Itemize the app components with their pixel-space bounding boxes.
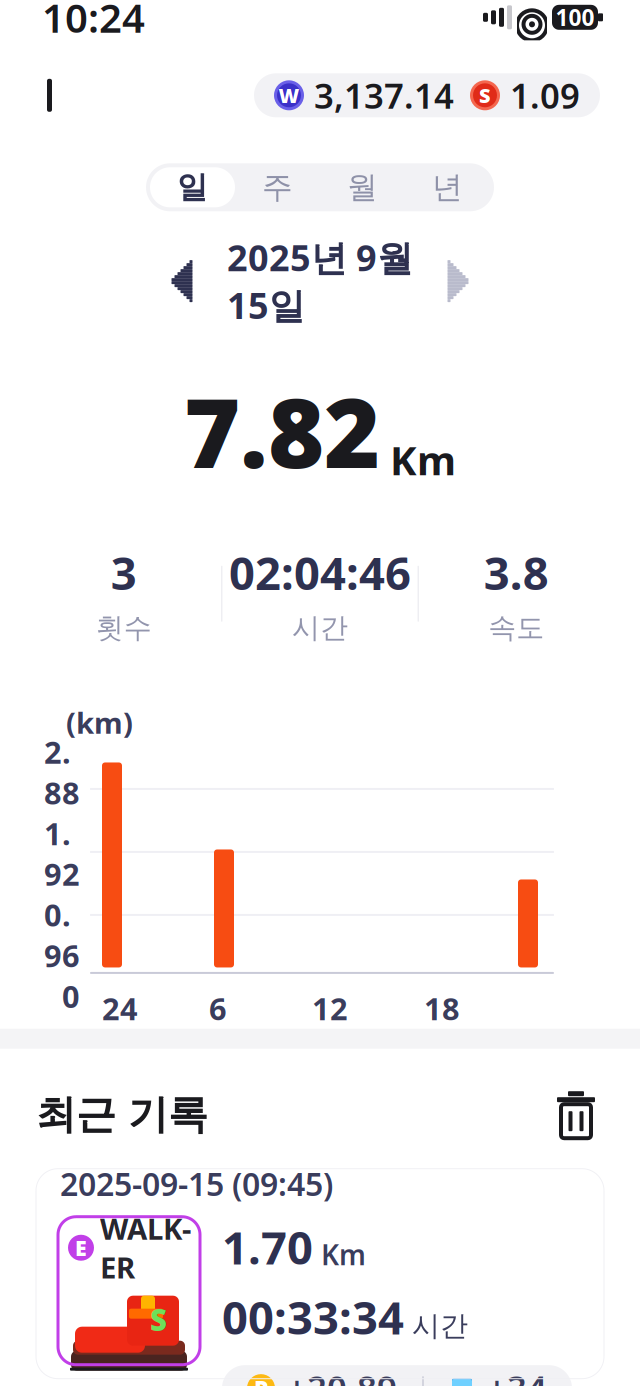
button[interactable]: 월 [320,167,405,207]
staticText: 7.82 [184,367,380,494]
staticText: 24 [102,988,138,1029]
staticText: 1.92 [44,813,80,894]
staticText: 0.96 [44,894,80,976]
staticText: +34 [487,1365,547,1386]
staticText: P [254,1373,268,1386]
button[interactable]: 2025-09-15 (09:45) [36,1169,604,1379]
staticText: Km [321,1236,366,1273]
button[interactable]: Delete records [548,1087,604,1143]
staticText: 6 [209,988,227,1029]
staticText: 0 [62,976,80,1016]
staticText: 2025-09-15 (09:45) [60,1162,333,1205]
staticText: WALKER [100,1209,191,1287]
button[interactable]: 일 [150,167,235,207]
staticText: 3,137.14 [314,72,454,118]
staticText: S [150,1300,167,1339]
staticText: 100 [555,2,594,32]
staticText: 3.8 [484,542,549,603]
staticText: 일 [177,168,208,206]
staticText: 주 [262,168,293,206]
staticText: (km) [66,703,133,742]
button[interactable]: Back [26,67,82,123]
staticText: 년 [432,168,463,206]
staticText: W [278,82,299,109]
staticText: 월 [347,168,378,206]
staticText: 00:33:34 [222,1287,404,1347]
staticText: 횟수 [96,611,152,645]
staticText: 시간 [412,1309,468,1343]
staticText: 2025년 9월 15일 [227,233,413,329]
staticText: 10:24 [42,0,145,44]
button[interactable]: 주 [235,167,320,207]
staticText: 속도 [488,611,544,645]
staticText: 3 [111,542,137,603]
staticText: 18 [424,988,460,1029]
staticText: E [75,1234,87,1262]
staticText: 최근 기록 [36,1090,208,1139]
staticText: 12 [312,988,348,1029]
staticText: S [479,82,491,109]
button[interactable]: 년 [405,167,490,207]
staticText: 02:04:46 [229,542,411,603]
staticText: +20.89 [287,1365,397,1386]
button[interactable]: Previous day [159,258,205,304]
button[interactable]: W [254,73,600,117]
staticText: 2.88 [44,731,80,813]
staticText: 1.70 [222,1217,313,1277]
button[interactable]: Next day [435,258,481,304]
staticText: 1.09 [510,72,580,118]
staticText: 시간 [292,611,348,645]
staticText: Km [390,433,456,486]
